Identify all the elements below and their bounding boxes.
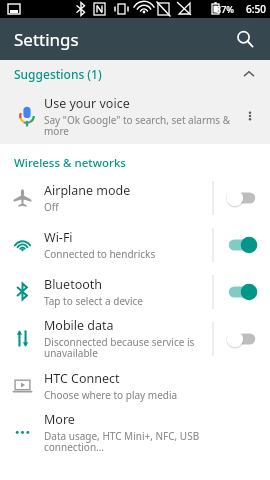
staticText: HTC Connect <box>44 370 120 387</box>
staticText: Use your voice <box>44 95 130 112</box>
staticText: More <box>44 411 75 428</box>
staticText: Wireless & networks <box>14 155 126 171</box>
staticText: Say "Ok Google" to search, set alarms & … <box>44 113 236 138</box>
staticText: Tap to select a device <box>44 294 143 308</box>
button[interactable]: Airplane mode <box>0 174 270 221</box>
button[interactable]: Bluetooth <box>0 268 270 315</box>
button[interactable]: Bluetooth switch <box>214 268 270 315</box>
staticText: 6:50 <box>246 2 266 16</box>
staticText: Choose where to play media <box>44 388 178 402</box>
button[interactable]: Mobile data <box>0 315 270 362</box>
button[interactable]: Wi-Fi switch <box>214 221 270 268</box>
button[interactable]: Airplane mode switch <box>214 174 270 221</box>
button[interactable]: Search <box>228 22 262 56</box>
button[interactable]: Suggestions (1) <box>0 60 270 88</box>
button[interactable]: HTC Connect <box>0 362 270 409</box>
staticText: Disconnected because service is unavaila… <box>44 335 206 360</box>
staticText: Mobile data <box>44 317 114 334</box>
button[interactable]: More options <box>236 102 264 130</box>
staticText: Bluetooth <box>44 276 103 293</box>
staticText: Airplane mode <box>44 182 131 199</box>
button[interactable]: More <box>0 409 270 456</box>
staticText: 87% <box>216 3 234 15</box>
button[interactable]: Wi-Fi <box>0 221 270 268</box>
button[interactable]: Use your voice <box>0 88 270 144</box>
staticText: Settings <box>14 28 79 51</box>
staticText: Data usage, HTC Mini+, NFC, USB connecti… <box>44 429 250 454</box>
staticText: Suggestions (1) <box>14 66 102 82</box>
staticText: Connected to hendricks <box>44 247 156 261</box>
button[interactable]: Mobile data switch <box>214 315 270 362</box>
staticText: Off <box>44 200 59 214</box>
staticText: Wi-Fi <box>44 229 73 246</box>
